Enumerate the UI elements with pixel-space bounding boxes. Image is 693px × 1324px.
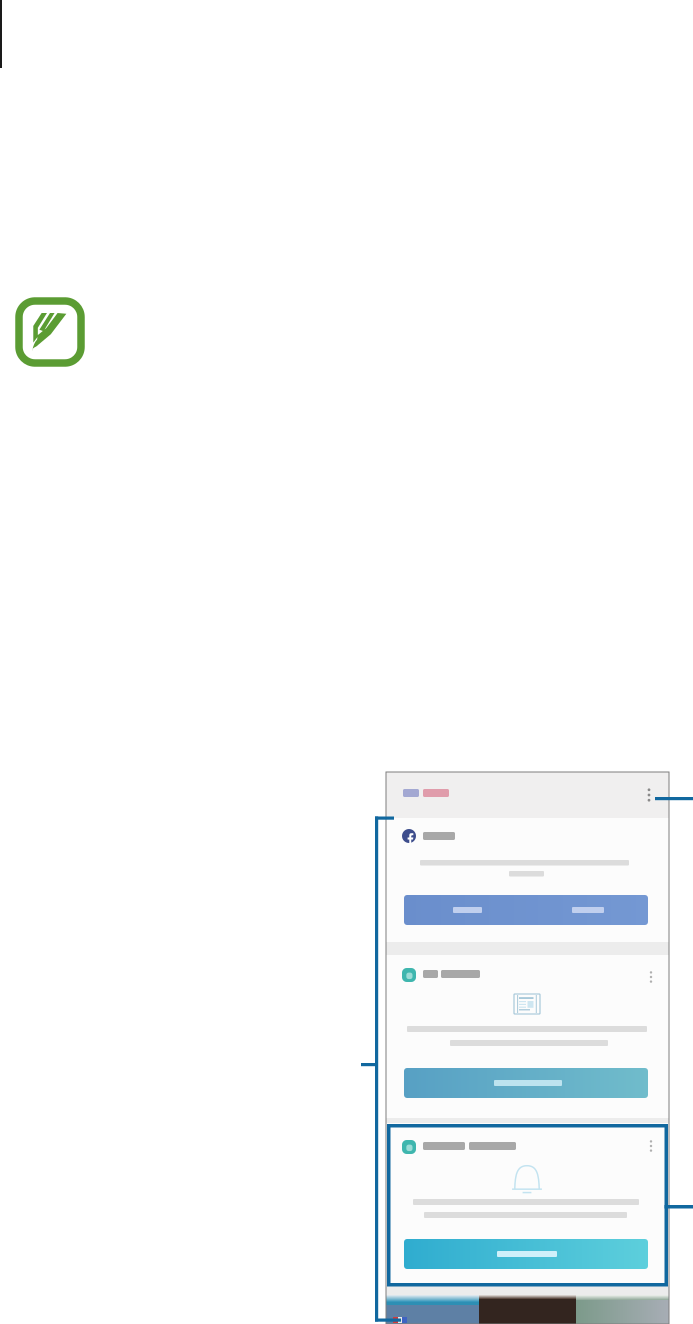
button[interactable]: More options	[638, 783, 660, 807]
button[interactable]	[404, 1239, 648, 1268]
button[interactable]	[404, 1068, 648, 1097]
button[interactable]	[404, 895, 648, 924]
button[interactable]: Card options	[642, 967, 660, 987]
button[interactable]: Card options	[642, 1136, 660, 1156]
